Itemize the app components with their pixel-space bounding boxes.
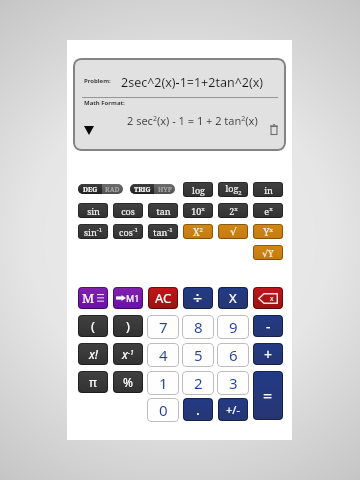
staticText: AC [155, 289, 172, 307]
button[interactable]: ÷ [183, 287, 213, 309]
staticText: 8 [194, 317, 203, 337]
button[interactable]: 2 [182, 371, 214, 395]
button[interactable]: √Y [253, 245, 283, 260]
staticText: . [196, 400, 200, 419]
staticText: Math Format: [84, 99, 125, 107]
button[interactable]: 8 [182, 315, 214, 339]
staticText: tan [156, 205, 171, 217]
staticText: HYP [158, 185, 172, 194]
button[interactable]: 4 [147, 343, 179, 367]
button[interactable]: Delete [270, 124, 278, 134]
staticText: M1 [126, 292, 140, 304]
button[interactable]: 3 [217, 371, 249, 395]
staticText: log [192, 184, 205, 196]
button[interactable]: + [253, 343, 283, 365]
staticText: - [266, 317, 271, 336]
staticText: cos-1 [119, 226, 138, 238]
staticText: 2 [194, 373, 203, 393]
button[interactable]: +/- [218, 398, 248, 421]
staticText: π [89, 374, 97, 390]
staticText: tan-1 [153, 226, 173, 238]
button[interactable]: Expand [84, 126, 94, 135]
button[interactable]: 5 [182, 343, 214, 367]
button[interactable]: tan [148, 203, 178, 218]
staticText: 2x [229, 205, 238, 217]
staticText: √Y [262, 247, 274, 259]
staticText: X [229, 289, 237, 307]
button[interactable]: ex [253, 203, 283, 218]
staticText: + [264, 345, 273, 364]
button[interactable]: log [183, 182, 213, 197]
staticText: X2 [193, 225, 203, 239]
staticText: √ [230, 226, 237, 238]
staticText: RAD [105, 185, 120, 194]
staticText: ex [264, 205, 273, 217]
button[interactable]: 2x [218, 203, 248, 218]
staticText: sin-1 [84, 226, 102, 238]
staticText: sin [87, 205, 100, 217]
staticText: 4 [159, 345, 168, 365]
staticText: 9 [229, 317, 238, 337]
staticText: = [263, 385, 273, 407]
button[interactable]: in [253, 182, 283, 197]
staticText: Problem: [84, 77, 111, 85]
staticText: 2 sec2(x) - 1 = 1 + 2 tan2(x) [127, 113, 258, 128]
button[interactable]: = [253, 371, 283, 420]
button[interactable]: 1 [147, 371, 179, 395]
staticText: 7 [159, 317, 168, 337]
button[interactable]: ) [113, 315, 143, 337]
button[interactable]: 0 [147, 398, 179, 422]
staticText: DEG [83, 185, 98, 194]
button[interactable]: 6 [217, 343, 249, 367]
button[interactable]: % [113, 371, 143, 393]
staticText: cos [121, 205, 135, 217]
button[interactable]: x-1 [113, 343, 143, 365]
staticText: log2 [225, 182, 242, 197]
button[interactable]: Backspace [253, 287, 283, 309]
staticText: 1 [159, 373, 168, 393]
staticText: 5 [194, 345, 203, 365]
button[interactable]: X2 [183, 224, 213, 239]
button[interactable]: π [78, 371, 108, 393]
staticText: in [264, 184, 273, 196]
staticText: x [270, 294, 274, 303]
staticText: 3 [229, 373, 238, 393]
staticText: TRIG [134, 185, 151, 194]
button[interactable]: 10x [183, 203, 213, 218]
button[interactable]: - [253, 315, 283, 337]
button[interactable]: TRIG [130, 184, 175, 194]
staticText: ÷ [193, 287, 203, 309]
button[interactable]: 9 [217, 315, 249, 339]
staticText: ( [91, 317, 95, 335]
staticText: x! [89, 346, 98, 362]
button[interactable]: Yx [253, 224, 283, 239]
button[interactable]: DEG [78, 184, 123, 194]
button[interactable]: M1 [113, 287, 143, 309]
staticText: x-1 [122, 346, 134, 362]
staticText: M [82, 289, 95, 307]
button[interactable]: 7 [147, 315, 179, 339]
button[interactable]: cos-1 [113, 224, 143, 239]
button[interactable]: . [183, 398, 213, 421]
staticText: 6 [229, 345, 238, 365]
button[interactable]: cos [113, 203, 143, 218]
button[interactable]: sin [78, 203, 108, 218]
staticText: +/- [226, 402, 240, 417]
button[interactable]: √ [218, 224, 248, 239]
staticText: % [123, 374, 133, 390]
button[interactable]: ( [78, 315, 108, 337]
staticText: Yx [263, 225, 273, 239]
button[interactable]: log2 [218, 182, 248, 197]
staticText: 10x [191, 205, 205, 217]
button[interactable]: M [78, 287, 108, 309]
button[interactable]: X [218, 287, 248, 309]
staticText: 2sec^2(x)-1=1+2tan^2(x) [121, 74, 264, 91]
button[interactable]: tan-1 [148, 224, 178, 239]
button[interactable]: x! [78, 343, 108, 365]
button[interactable]: sin-1 [78, 224, 108, 239]
button[interactable]: AC [148, 287, 178, 309]
staticText: ) [126, 317, 130, 335]
staticText: 0 [159, 400, 168, 420]
